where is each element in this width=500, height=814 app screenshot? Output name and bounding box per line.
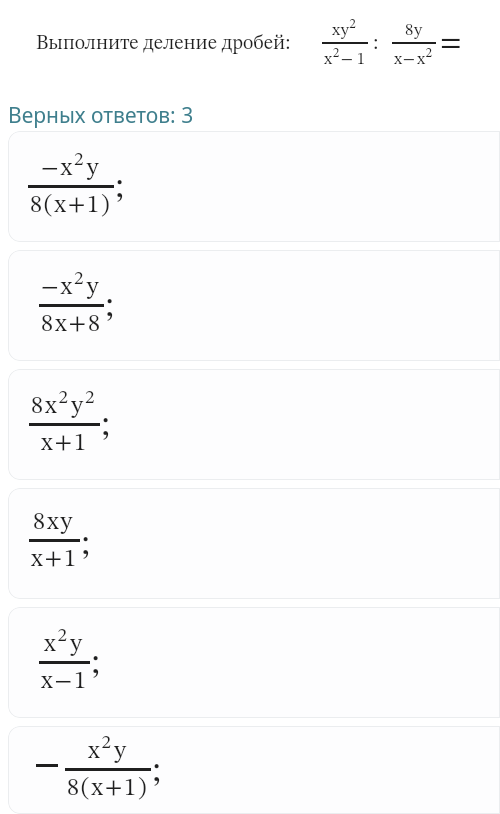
staticText: 8(x+1) [30, 193, 112, 218]
staticText: −x2 y [41, 269, 101, 300]
staticText: 8y [405, 22, 423, 39]
staticText: 8x2 y2 [31, 388, 98, 419]
staticText: ; [152, 754, 161, 789]
button[interactable]: x2 y [8, 607, 500, 718]
staticText: x2 y [88, 733, 128, 764]
staticText: Верных ответов: 3 [8, 101, 194, 130]
staticText: x2 − 1 [324, 47, 366, 68]
button[interactable]: 8x2 y2 [8, 369, 500, 480]
staticText: 8x+8 [41, 312, 102, 337]
staticText: = [440, 28, 462, 58]
staticText: x+1 [31, 547, 78, 572]
staticText: ; [101, 408, 110, 443]
button[interactable]: −x2 y [8, 131, 500, 242]
staticText: 8(x+1) [67, 776, 149, 801]
staticText: −x2 y [41, 150, 101, 181]
staticText: ; [115, 170, 124, 205]
staticText: ; [91, 646, 100, 681]
staticText: x2 y [44, 626, 84, 657]
staticText: ; [105, 289, 114, 324]
staticText: x− x2 [394, 47, 434, 68]
staticText: x−1 [41, 669, 88, 694]
button[interactable]: −x2 y [8, 250, 500, 361]
staticText: ; [81, 527, 90, 562]
staticText: xy2 [332, 18, 358, 39]
button[interactable]: x2 y [8, 726, 500, 814]
button[interactable]: 8xy [8, 488, 500, 599]
staticText: 8xy [33, 510, 75, 535]
staticText: x+1 [41, 431, 88, 456]
staticText: Выполните деление дробей: [36, 34, 291, 54]
staticText: : [373, 33, 379, 54]
